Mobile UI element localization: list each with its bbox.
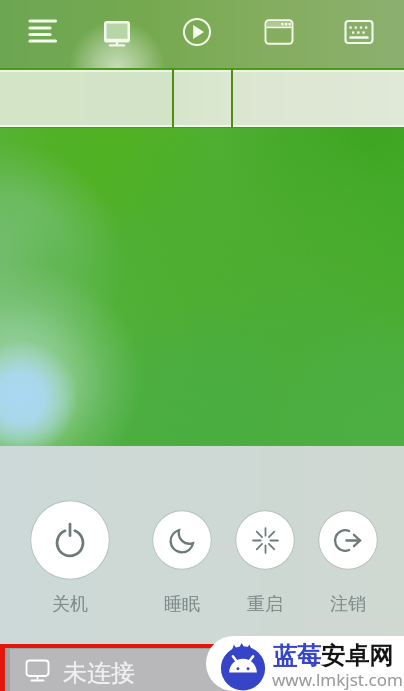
button[interactable]: Menu [18, 10, 62, 54]
staticText: 关机 [52, 593, 88, 616]
button[interactable]: Keyboard [337, 10, 381, 54]
button[interactable]: 重启 [225, 510, 305, 636]
staticText: 重启 [247, 593, 283, 616]
button[interactable]: Play [175, 10, 219, 54]
button[interactable]: 注销 [308, 510, 388, 636]
button[interactable] [0, 70, 172, 127]
button[interactable]: Windows [257, 10, 301, 54]
staticText: 未连接 [63, 658, 135, 688]
button[interactable]: 睡眠 [142, 510, 222, 636]
button[interactable]: 未连接 [25, 658, 404, 691]
staticText: 蓝莓 [273, 641, 321, 671]
button[interactable]: Display [95, 10, 139, 54]
staticText: 睡眠 [164, 593, 200, 616]
staticText: www.lmkjst.com [272, 668, 403, 691]
staticText: 注销 [330, 593, 366, 616]
staticText: 安卓网 [321, 641, 393, 671]
button[interactable] [174, 70, 231, 127]
button[interactable] [233, 70, 404, 127]
button[interactable]: 关机 [30, 500, 110, 646]
